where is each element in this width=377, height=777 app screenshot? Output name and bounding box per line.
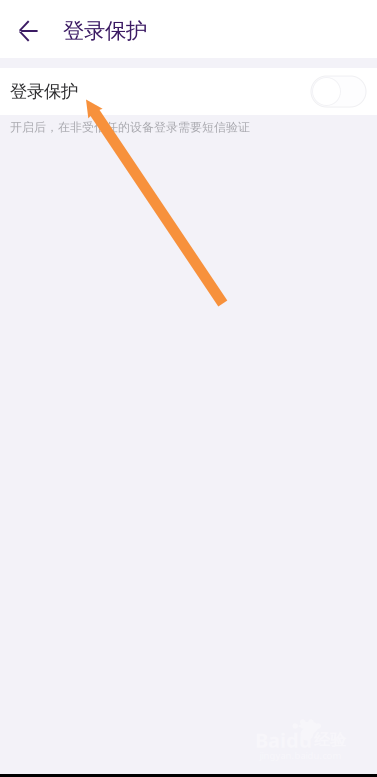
button[interactable]: Back bbox=[0, 9, 57, 53]
button[interactable]: 登录保护 bbox=[0, 68, 377, 115]
staticText: 开启后，在非受信任的设备登录需要短信验证 bbox=[10, 120, 250, 135]
staticText: 登录保护 bbox=[63, 18, 147, 44]
staticText: 登录保护 bbox=[10, 81, 78, 102]
